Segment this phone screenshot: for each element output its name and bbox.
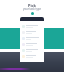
button[interactable] <box>22 29 42 35</box>
button[interactable] <box>22 35 42 41</box>
button[interactable] <box>22 53 42 59</box>
button[interactable] <box>22 23 42 29</box>
other: App logo <box>31 12 34 15</box>
button[interactable] <box>22 47 42 53</box>
staticText: your task type <box>23 7 41 11</box>
button[interactable] <box>22 41 42 47</box>
staticText: Pick <box>28 3 36 8</box>
